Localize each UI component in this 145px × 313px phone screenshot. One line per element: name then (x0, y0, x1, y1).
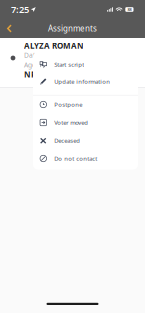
staticText: Assignments (48, 23, 97, 34)
staticText: ALYZA ROMAN (24, 40, 84, 51)
staticText: Voter moved (54, 118, 88, 126)
button[interactable]: Postpone (33, 95, 138, 113)
staticText: Update information (54, 77, 110, 85)
button[interactable]: Back (0, 19, 19, 38)
button[interactable]: Voter moved (33, 113, 138, 131)
button[interactable]: Do not contact (33, 149, 138, 167)
staticText: NPF (24, 69, 40, 80)
button[interactable]: Update information (33, 73, 138, 90)
button[interactable]: ALYZA ROMAN (0, 38, 145, 88)
button[interactable]: Deceased (33, 131, 138, 149)
staticText: Postpone (54, 100, 82, 108)
button[interactable]: Start script (33, 56, 138, 73)
staticText: Date of birth 9/14/1987 (24, 51, 98, 60)
staticText: 7:25 (11, 3, 29, 16)
staticText: Deceased (54, 136, 80, 144)
staticText: Start script (54, 60, 84, 68)
staticText: 88 (127, 7, 131, 12)
staticText: Age 37 · Female (24, 60, 75, 69)
staticText: Do not contact (54, 154, 97, 162)
